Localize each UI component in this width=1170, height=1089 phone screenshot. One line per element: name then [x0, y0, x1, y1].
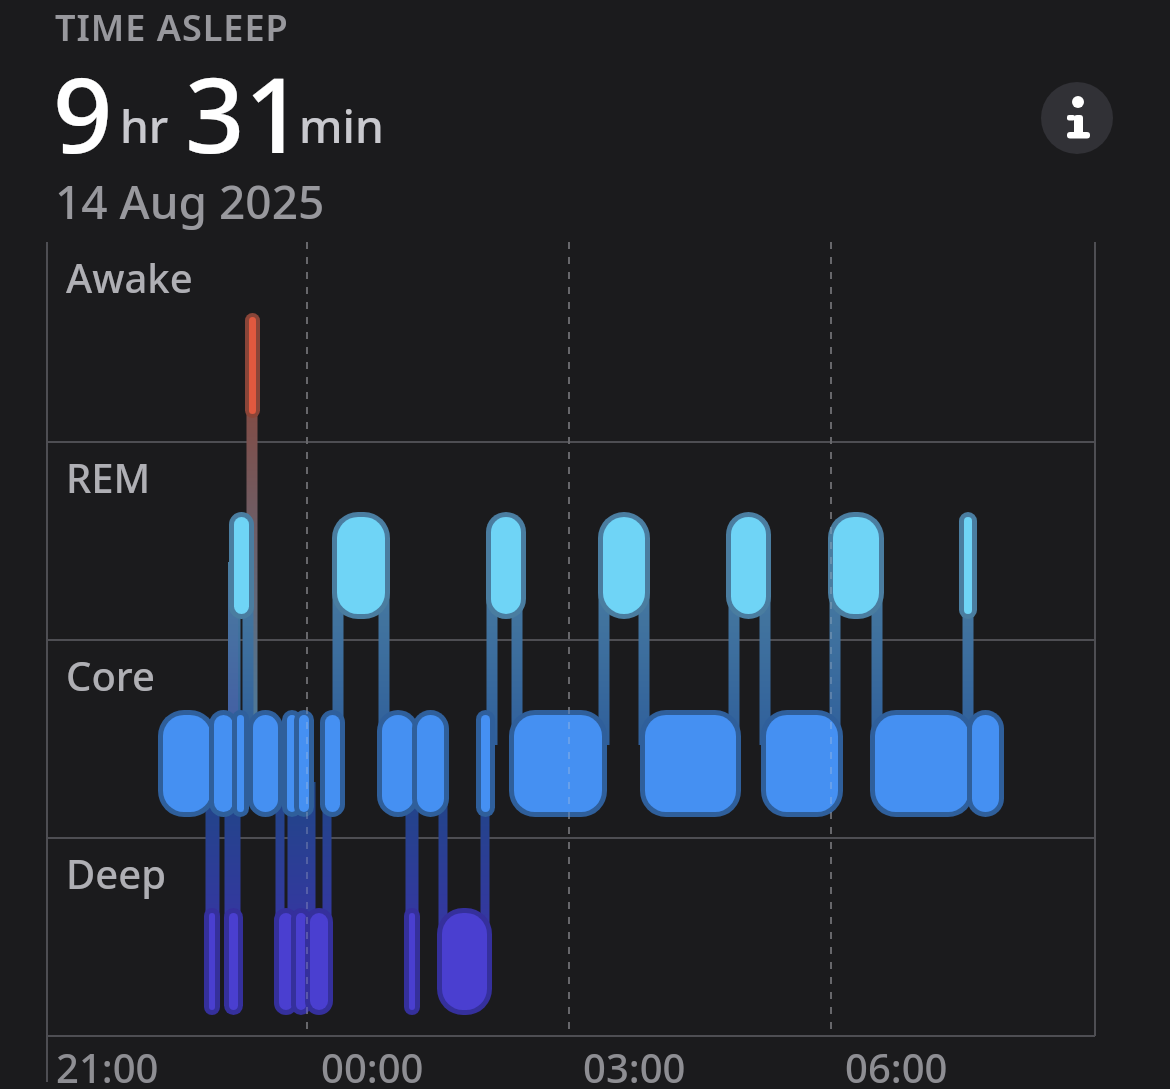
staticText: Core	[66, 648, 155, 702]
staticText: 9	[53, 42, 113, 184]
staticText: 31	[185, 42, 304, 184]
button[interactable]	[1041, 82, 1113, 154]
staticText: 00:00	[321, 1040, 424, 1089]
staticText: Awake	[66, 250, 193, 304]
staticText: min	[299, 94, 384, 157]
staticText: 14 Aug 2025	[55, 170, 325, 233]
staticText: 21:00	[56, 1040, 159, 1089]
staticText: Deep	[66, 846, 166, 900]
staticText: REM	[66, 450, 151, 504]
staticText: 03:00	[583, 1040, 686, 1089]
staticText: hr	[120, 94, 169, 157]
staticText: 06:00	[845, 1040, 948, 1089]
staticText: TIME ASLEEP	[55, 3, 289, 52]
